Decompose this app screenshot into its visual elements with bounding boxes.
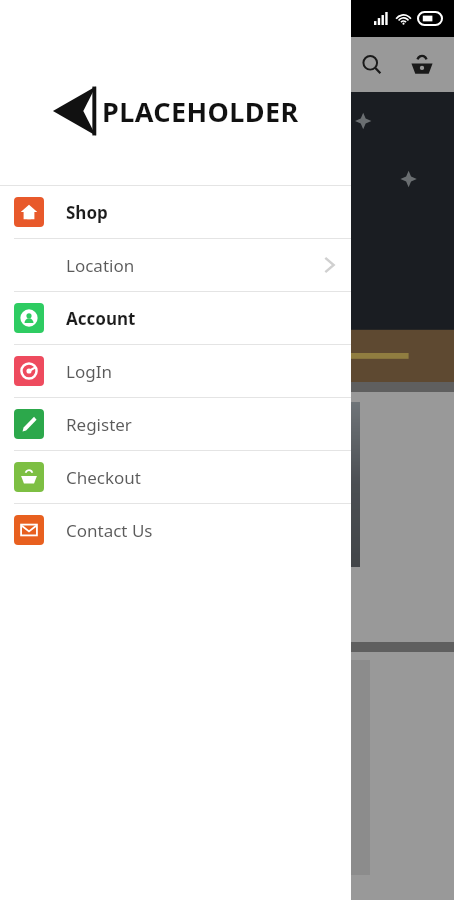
button[interactable]: Account: [0, 292, 351, 344]
staticText: Shop: [66, 201, 108, 224]
button[interactable]: LogIn: [0, 345, 351, 397]
button[interactable]: Contact Us: [0, 504, 351, 556]
staticText: LogIn: [66, 360, 112, 383]
button[interactable]: Cart: [408, 51, 436, 79]
button[interactable]: Checkout: [0, 451, 351, 503]
staticText: PLACEHOLDER: [102, 93, 299, 130]
button[interactable]: Search: [358, 51, 386, 79]
button[interactable]: Shop: [0, 186, 351, 238]
button[interactable]: Register: [0, 398, 351, 450]
staticText: Contact Us: [66, 519, 153, 542]
staticText: Location: [66, 254, 135, 277]
staticText: Account: [66, 307, 136, 330]
button[interactable]: Location: [0, 239, 351, 291]
staticText: Checkout: [66, 466, 142, 489]
staticText: Register: [66, 413, 132, 436]
